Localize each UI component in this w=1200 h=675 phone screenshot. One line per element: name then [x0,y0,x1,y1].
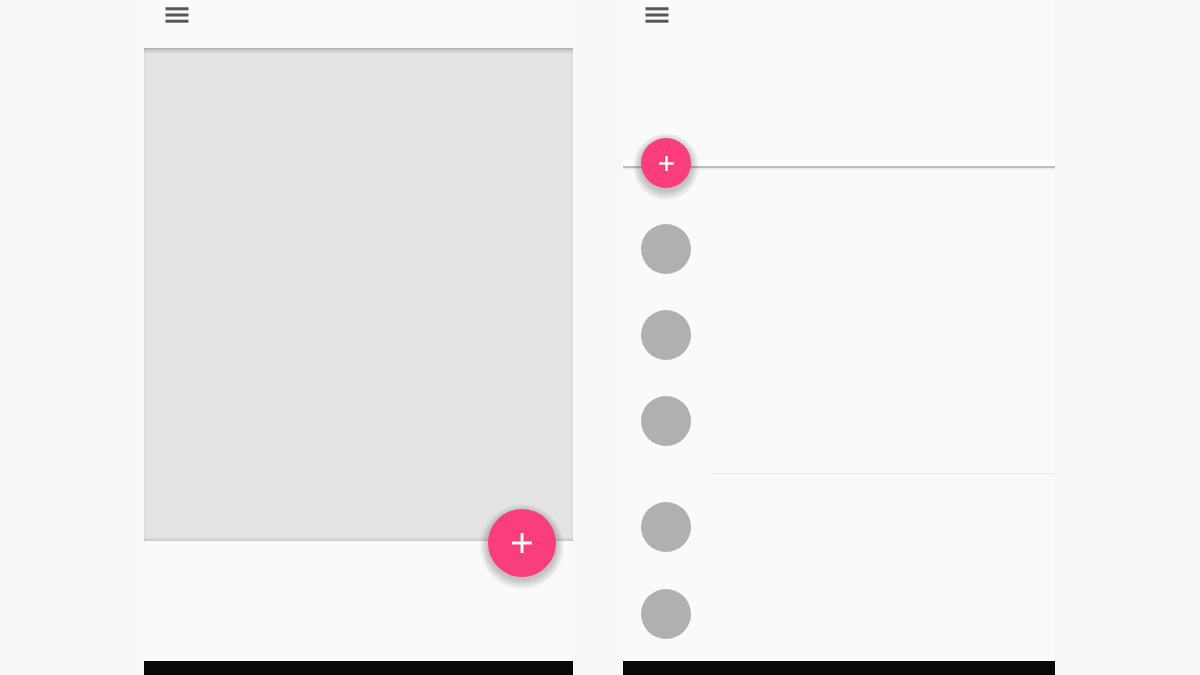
button[interactable]: Contact [641,502,691,552]
button[interactable]: Add [488,509,556,577]
button[interactable]: Contact [641,589,691,639]
button[interactable]: Open navigation menu [633,0,681,39]
button[interactable]: Add [641,138,691,188]
button[interactable]: Open navigation menu [153,0,201,39]
button[interactable]: Contact [641,224,691,274]
button[interactable]: Contact [641,396,691,446]
button[interactable]: Contact [641,310,691,360]
